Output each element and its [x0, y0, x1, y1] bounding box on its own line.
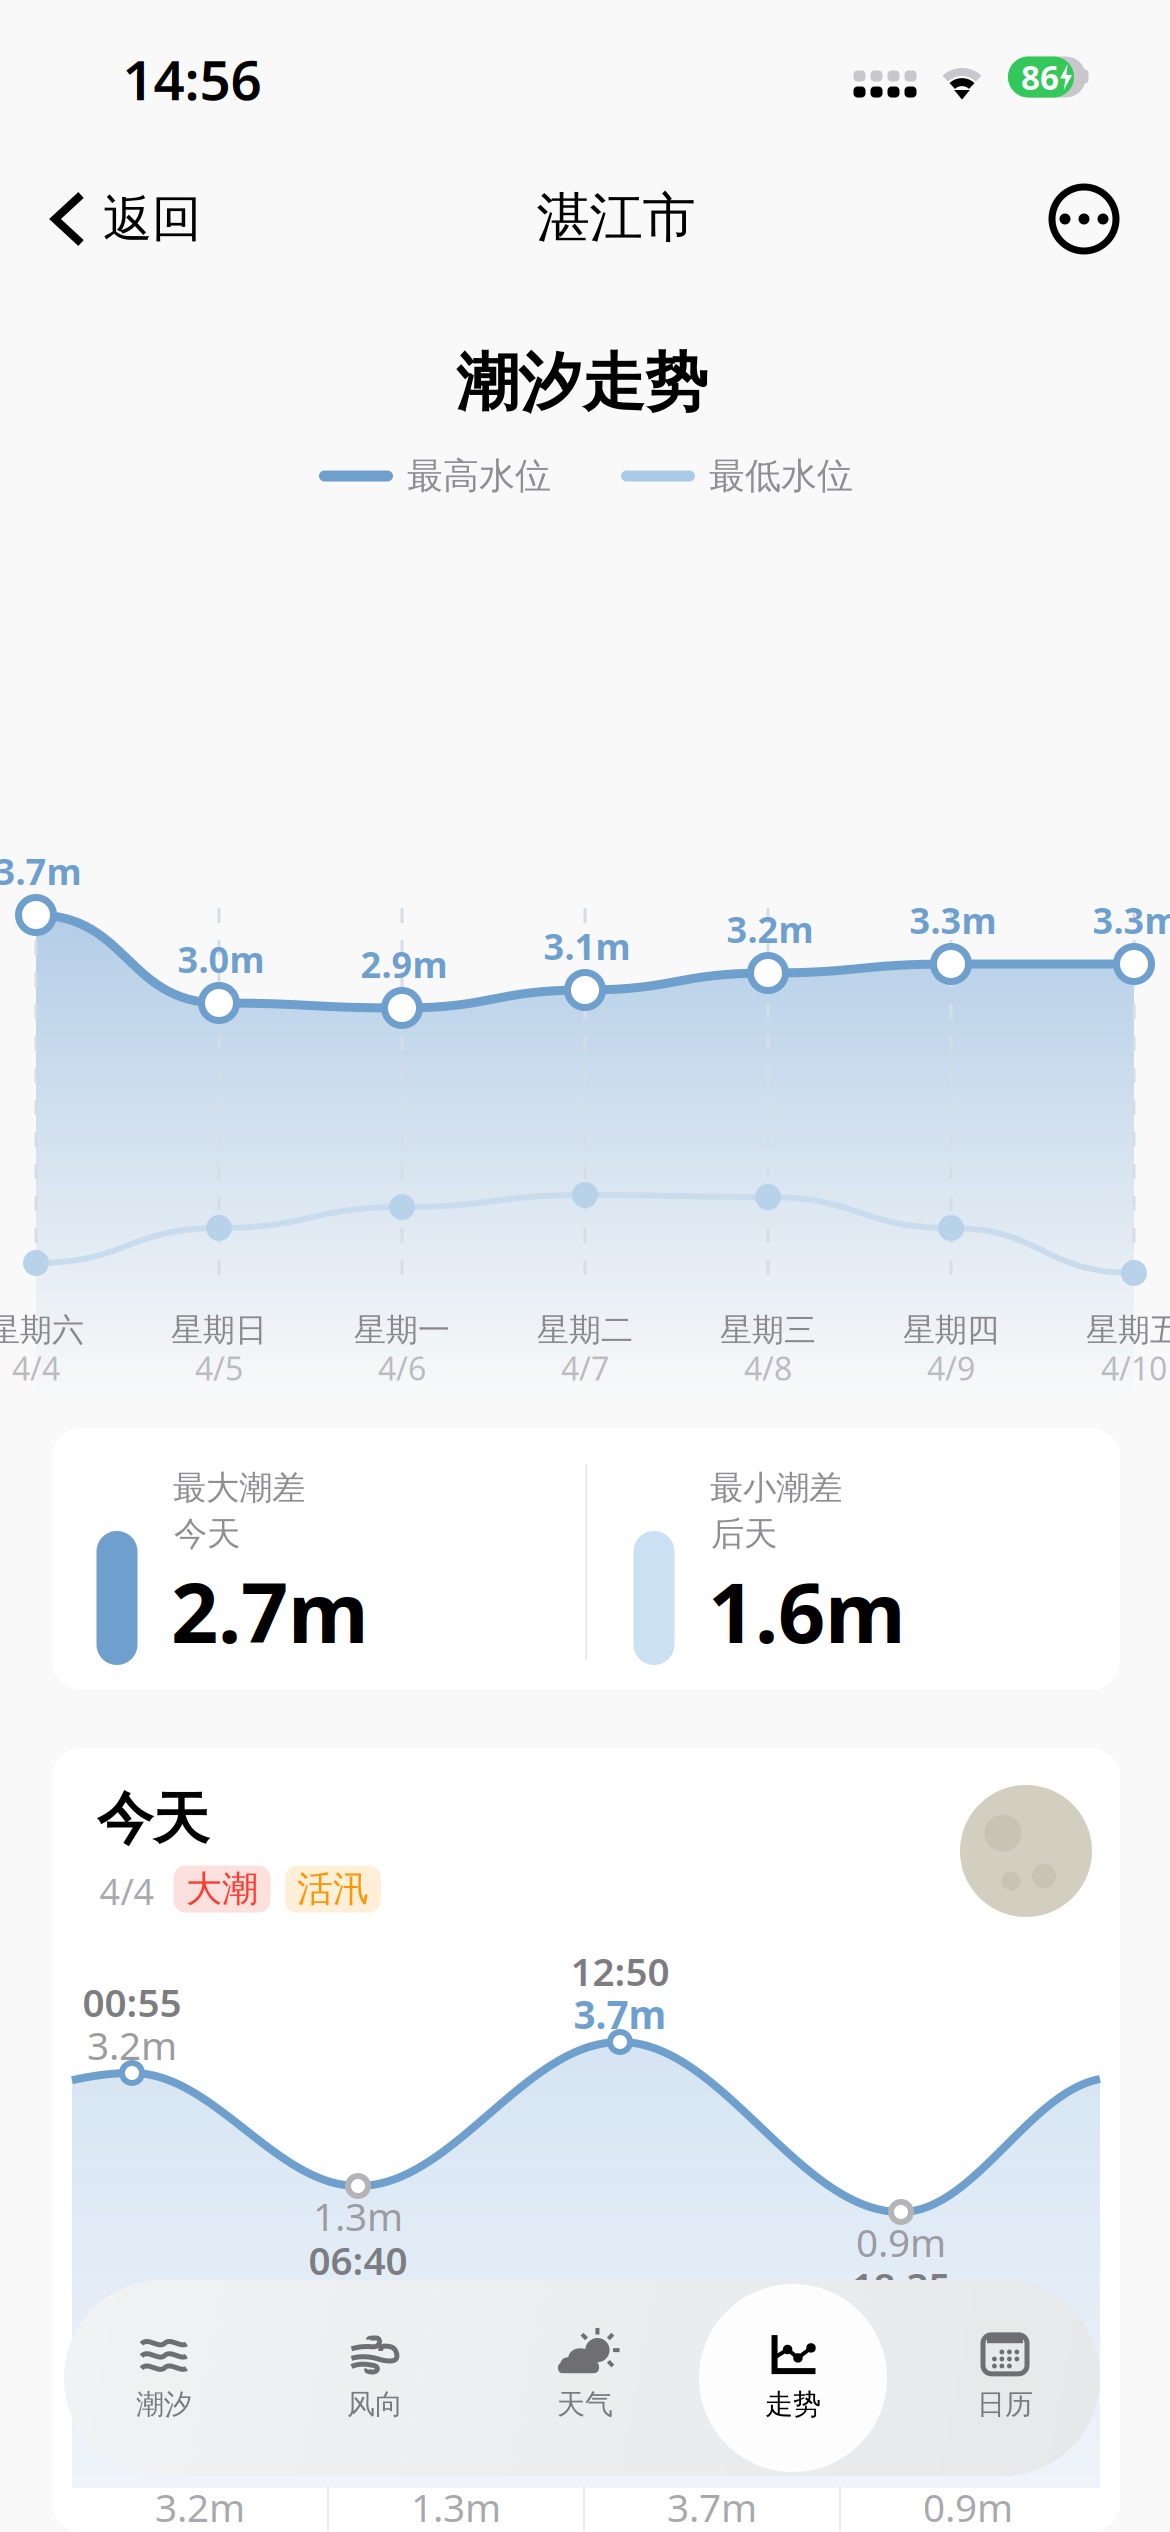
staticText: 星期二 [537, 1310, 633, 1350]
staticText: 3.0m [177, 935, 264, 983]
staticText: 4/4 [99, 1867, 154, 1915]
staticText: 12:50 [570, 1945, 669, 1997]
staticText: 最大潮差 [173, 1467, 305, 1508]
staticText: 3.7m [667, 2481, 757, 2532]
staticText: 3.3m [1092, 896, 1170, 944]
staticText: 天气 [557, 2387, 613, 2422]
staticText: 后天 [711, 1513, 777, 1554]
button[interactable]: 日历 [905, 2284, 1105, 2472]
staticText: 1.3m [411, 2481, 501, 2532]
staticText: 星期一 [354, 1310, 450, 1350]
staticText: 最小潮差 [710, 1467, 842, 1508]
staticText: 4/9 [927, 1347, 975, 1389]
staticText: 星期三 [720, 1310, 816, 1350]
staticText: 0.9m [923, 2481, 1013, 2532]
staticText: 4/5 [195, 1347, 243, 1389]
staticText: 3.1m [543, 922, 630, 970]
staticText: 4/10 [1101, 1347, 1167, 1389]
staticText: 3.3m [909, 896, 996, 944]
staticText: 返回 [103, 189, 201, 249]
staticText: 3.7m [0, 847, 81, 895]
staticText: 2.7m [171, 1556, 369, 1666]
button[interactable]: 风向 [275, 2284, 475, 2472]
staticText: 14:56 [122, 43, 261, 115]
staticText: 4/7 [561, 1347, 609, 1389]
staticText: 4/6 [378, 1347, 426, 1389]
staticText: 风向 [347, 2387, 403, 2422]
staticText: 06:40 [308, 2234, 407, 2286]
button[interactable]: 天气 [485, 2284, 685, 2472]
staticText: 86 [1021, 55, 1059, 99]
staticText: 潮汐 [136, 2387, 192, 2422]
staticText: 3.2m [87, 2019, 177, 2071]
staticText: 最高水位 [407, 454, 551, 498]
staticText: 星期六 [0, 1310, 84, 1350]
button[interactable]: More options [1052, 187, 1116, 251]
staticText: 3.2m [726, 905, 813, 953]
staticText: 湛江市 [536, 185, 695, 251]
staticText: 3.2m [155, 2481, 245, 2532]
staticText: 今天 [97, 1785, 209, 1853]
staticText: 4/8 [744, 1347, 792, 1389]
staticText: 活汛 [297, 1867, 369, 1911]
staticText: 星期四 [903, 1310, 999, 1350]
staticText: 0.9m [856, 2216, 946, 2268]
staticText: 00:55 [82, 1976, 181, 2028]
staticText: 今天 [174, 1513, 240, 1554]
staticText: 2.9m [360, 940, 447, 988]
staticText: 4/4 [12, 1347, 60, 1389]
staticText: 大潮 [186, 1867, 258, 1911]
staticText: 1.3m [313, 2190, 403, 2242]
staticText: 走势 [765, 2387, 821, 2422]
staticText: 最低水位 [709, 454, 853, 498]
staticText: 星期五 [1086, 1310, 1170, 1350]
staticText: 日历 [977, 2387, 1033, 2422]
staticText: 潮汐走势 [456, 344, 708, 421]
staticText: 星期日 [171, 1310, 267, 1350]
staticText: 3.7m [573, 1988, 666, 2040]
staticText: 18:35 [851, 2260, 950, 2312]
button[interactable]: 潮汐 [64, 2284, 264, 2472]
button[interactable]: 返回 [35, 169, 221, 269]
button[interactable]: 走势 [693, 2284, 893, 2472]
staticText: 1.6m [708, 1556, 906, 1666]
